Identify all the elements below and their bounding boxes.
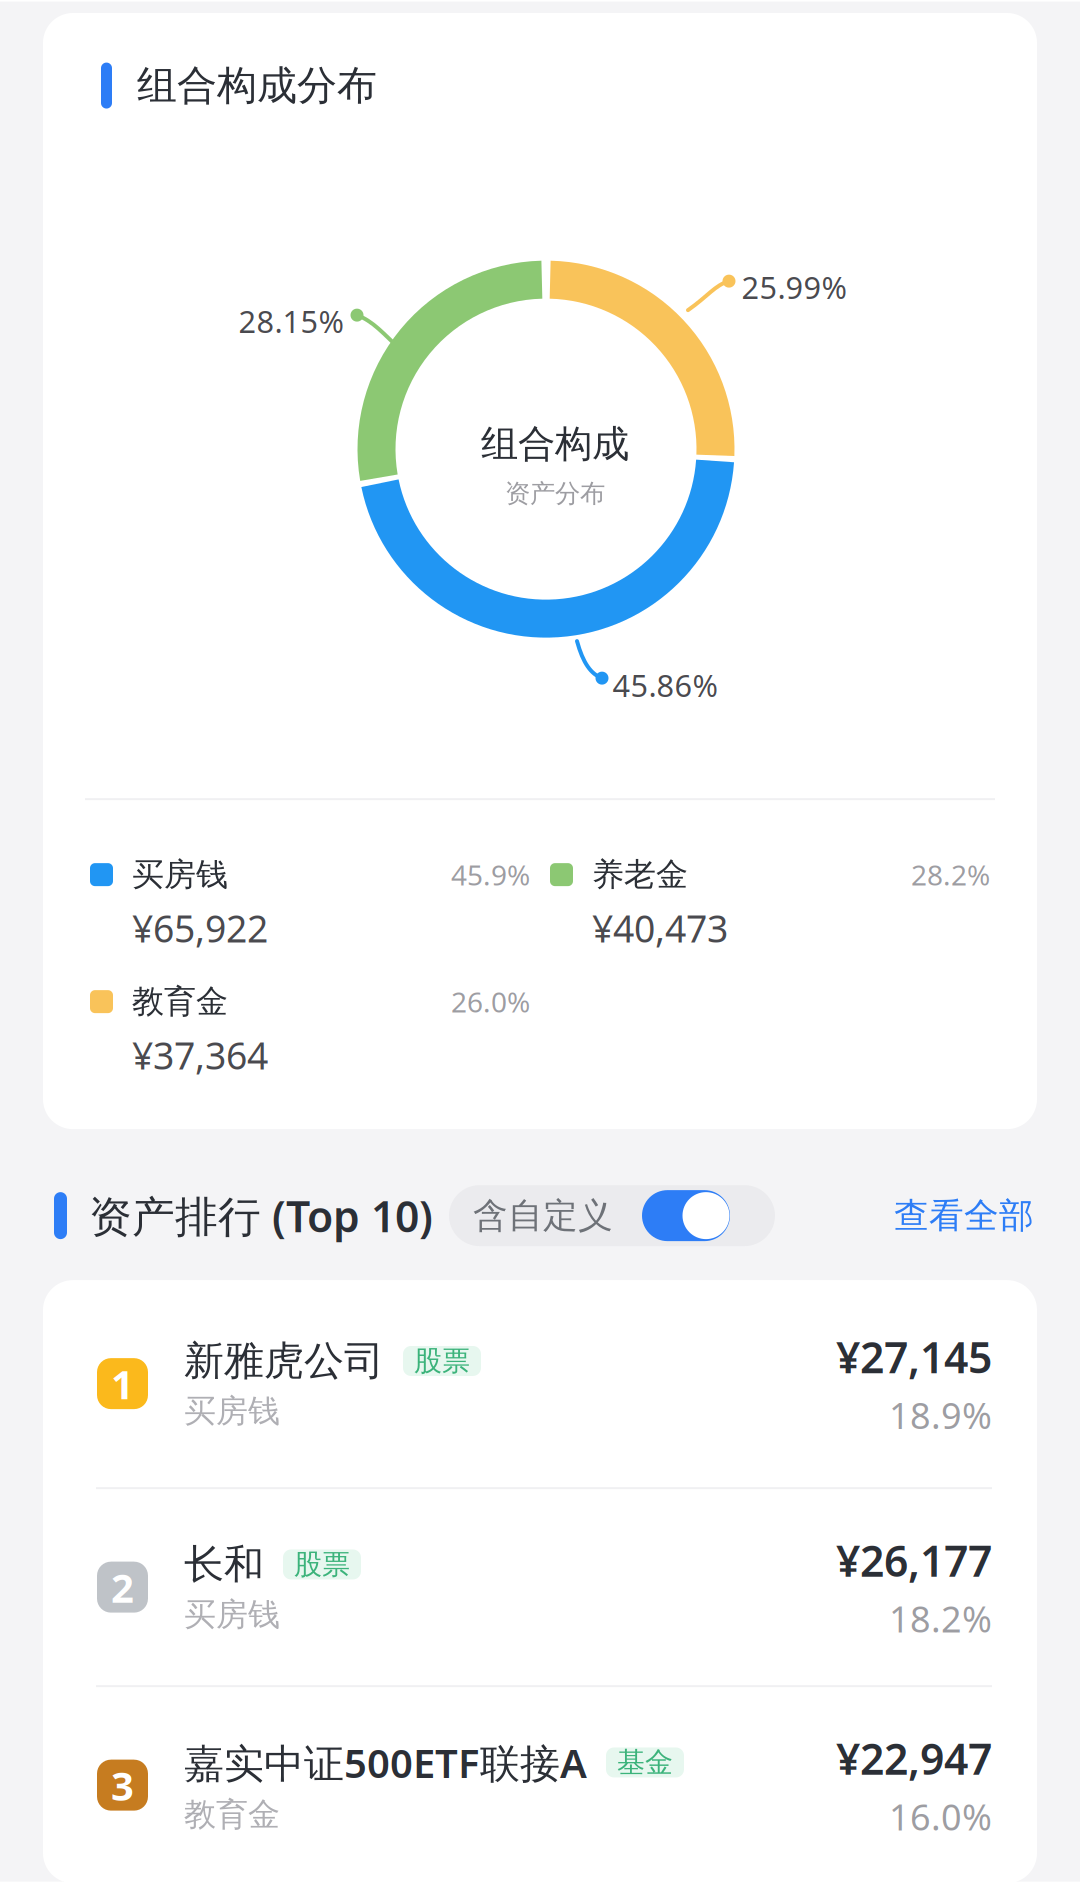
staticText: ¥26,177: [836, 1532, 992, 1589]
staticText: 新雅虎公司: [184, 1336, 384, 1385]
staticText: 26.0%: [451, 983, 530, 1020]
staticText: 18.2%: [889, 1595, 992, 1642]
button[interactable]: 含自定义: [449, 1185, 775, 1246]
staticText: 组合构成分布: [137, 61, 377, 110]
button[interactable]: 2: [43, 1489, 1037, 1685]
staticText: 股票: [294, 1547, 350, 1582]
staticText: 养老金: [592, 855, 688, 894]
staticText: 25.99%: [741, 267, 846, 307]
staticText: ¥27,145: [836, 1328, 992, 1385]
staticText: 18.9%: [889, 1391, 992, 1439]
staticText: 28.2%: [911, 856, 990, 893]
staticText: 长和: [184, 1540, 264, 1589]
staticText: ¥40,473: [592, 903, 728, 953]
staticText: 基金: [617, 1745, 673, 1780]
staticText: 45.86%: [612, 665, 717, 705]
staticText: 含自定义: [473, 1194, 613, 1237]
staticText: 28.15%: [238, 301, 343, 341]
staticText: 嘉实中证500ETF联接A: [184, 1736, 587, 1789]
staticText: 教育金: [184, 1795, 280, 1834]
staticText: ¥37,364: [132, 1030, 268, 1080]
staticText: 资产排行 (Top 10): [89, 1187, 433, 1244]
button[interactable]: 1: [43, 1280, 1037, 1487]
staticText: 买房钱: [184, 1595, 280, 1634]
button[interactable]: 3: [43, 1687, 1037, 1883]
button[interactable]: 查看全部: [894, 1194, 1034, 1237]
staticText: 3: [111, 1759, 134, 1812]
staticText: ¥22,947: [836, 1730, 992, 1787]
staticText: 查看全部: [894, 1194, 1034, 1237]
staticText: 资产分布: [505, 478, 605, 509]
staticText: 买房钱: [184, 1391, 280, 1431]
staticText: 教育金: [132, 982, 228, 1021]
staticText: 2: [111, 1561, 134, 1614]
staticText: ¥65,922: [132, 903, 268, 953]
staticText: 1: [111, 1357, 134, 1410]
staticText: 16.0%: [889, 1793, 992, 1840]
staticText: 买房钱: [132, 855, 228, 894]
staticText: 股票: [414, 1344, 470, 1378]
staticText: 组合构成: [481, 421, 629, 467]
staticText: 45.9%: [451, 856, 530, 893]
